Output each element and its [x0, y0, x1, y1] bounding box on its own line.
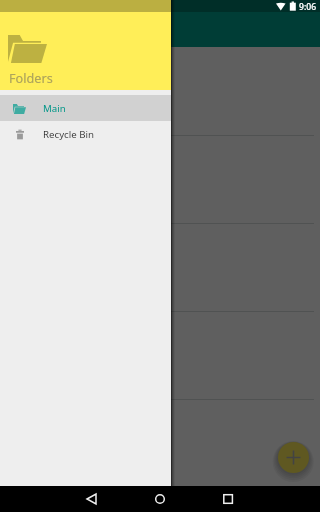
staticText: Folders [9, 69, 53, 86]
button[interactable]: Add [278, 442, 309, 473]
staticText: 9:06 [299, 1, 317, 13]
button[interactable] [0, 136, 320, 224]
button[interactable]: Home [147, 486, 173, 512]
button[interactable] [0, 48, 320, 136]
button[interactable] [0, 400, 320, 488]
button[interactable] [0, 224, 320, 312]
button[interactable] [0, 488, 320, 512]
button[interactable]: Recycle Bin [0, 121, 171, 147]
button[interactable]: Back [80, 486, 106, 512]
button[interactable] [0, 312, 320, 400]
button[interactable]: Recents [215, 486, 241, 512]
staticText: Main [43, 102, 66, 115]
staticText: Recycle Bin [43, 128, 94, 141]
button[interactable]: Main [0, 95, 171, 121]
